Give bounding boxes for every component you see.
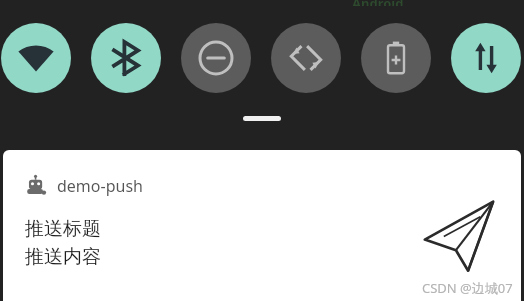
staticText: 推送标题: [25, 217, 101, 241]
button[interactable]: [243, 116, 281, 121]
button[interactable]: Do Not Disturb: [181, 23, 251, 93]
button[interactable]: Bluetooth: [91, 23, 161, 93]
button[interactable]: Mobile data: [451, 23, 521, 93]
staticText: demo-push: [57, 175, 143, 197]
staticText: CSDN @边城07: [422, 279, 513, 297]
button[interactable]: demo-push: [3, 150, 521, 301]
staticText: 推送内容: [25, 245, 101, 269]
button[interactable]: Battery saver: [361, 23, 431, 93]
button[interactable]: Auto rotate: [271, 23, 341, 93]
staticText: Android: [352, 0, 404, 6]
button[interactable]: Wi-Fi: [1, 23, 71, 93]
